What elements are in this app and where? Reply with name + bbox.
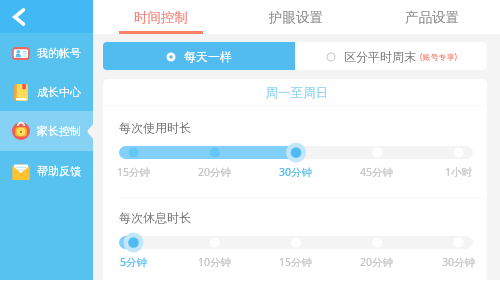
staticText: 15分钟: [279, 255, 313, 269]
button[interactable]: 区分平时周末: [295, 42, 487, 70]
staticText: 1小时: [445, 165, 473, 179]
staticText: 30分钟: [279, 165, 313, 179]
staticText: 护眼设置: [269, 9, 323, 26]
staticText: 每次使用时长: [119, 120, 191, 135]
staticText: (账号专享): [420, 51, 457, 62]
staticText: 10分钟: [198, 255, 232, 269]
staticText: 周一至周日: [105, 85, 487, 101]
button[interactable]: 家长控制: [0, 111, 93, 151]
staticText: 区分平时周末: [344, 49, 416, 64]
button[interactable]: 我的帐号: [0, 33, 93, 73]
staticText: 产品设置: [405, 9, 459, 26]
button[interactable]: 每天一样: [103, 42, 295, 70]
button[interactable]: [119, 140, 473, 165]
button[interactable]: 时间控制: [93, 0, 228, 34]
staticText: 每次休息时长: [119, 210, 191, 225]
staticText: 20分钟: [198, 165, 232, 179]
staticText: 每天一样: [184, 49, 232, 64]
staticText: 成长中心: [37, 85, 81, 99]
button[interactable]: 产品设置: [364, 0, 500, 34]
staticText: 15分钟: [117, 165, 151, 179]
button[interactable]: Back: [0, 0, 93, 33]
button[interactable]: 护眼设置: [228, 0, 364, 34]
staticText: 我的帐号: [37, 46, 81, 60]
button[interactable]: [119, 230, 473, 255]
staticText: 45分钟: [360, 165, 394, 179]
staticText: 5分钟: [120, 255, 148, 269]
button[interactable]: 帮助反馈: [0, 151, 93, 191]
staticText: 30分钟: [442, 255, 476, 269]
staticText: 时间控制: [134, 9, 188, 26]
button[interactable]: 成长中心: [0, 72, 93, 112]
staticText: 20分钟: [360, 255, 394, 269]
staticText: 家长控制: [37, 124, 81, 138]
staticText: 帮助反馈: [37, 164, 81, 178]
